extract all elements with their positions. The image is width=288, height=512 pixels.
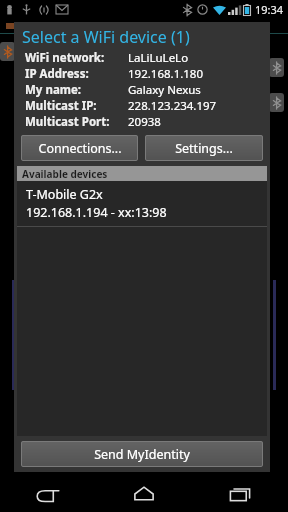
button[interactable]: Recents [192, 475, 288, 512]
staticText: My name: [25, 82, 128, 98]
staticText: 19:34 [255, 2, 284, 17]
staticText: Multicast IP: [25, 98, 128, 114]
button[interactable]: Back [0, 475, 96, 512]
staticText: WiFi network: [25, 50, 128, 66]
staticText: Galaxy Nexus [128, 82, 201, 98]
staticText: LaLiLuLeLo [128, 50, 189, 66]
button[interactable]: Connections... [21, 135, 138, 161]
button[interactable]: Settings... [145, 135, 263, 161]
button[interactable]: Send MyIdentity [21, 441, 263, 467]
button[interactable]: T-Mobile G2x [17, 181, 267, 226]
staticText: 228.123.234.197 [128, 98, 217, 114]
staticText: 192.168.1.180 [128, 66, 204, 82]
staticText: Select a WiFi device (1) [22, 26, 190, 48]
staticText: 20938 [128, 114, 161, 130]
staticText: Connections... [38, 140, 122, 157]
staticText: Multicast Port: [25, 114, 128, 130]
staticText: T-Mobile G2x [26, 186, 103, 203]
staticText: Send MyIdentity [94, 446, 190, 463]
staticText: Settings... [175, 140, 233, 157]
staticText: 192.168.1.194 - xx:13:98 [26, 204, 167, 221]
staticText: IP Address: [25, 66, 128, 82]
staticText: Available devices [22, 167, 108, 181]
button[interactable]: Home [96, 475, 192, 512]
